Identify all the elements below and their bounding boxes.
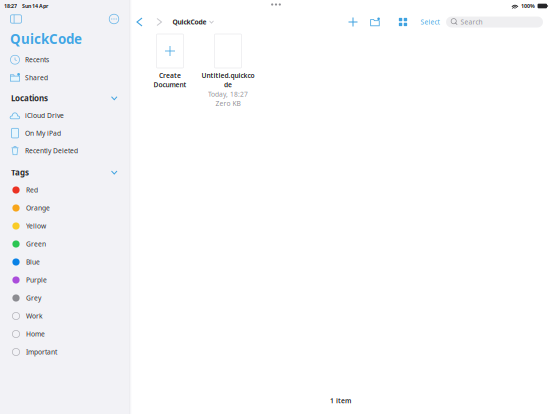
- button[interactable]: Green: [0, 235, 129, 253]
- staticText: Tags: [11, 167, 29, 178]
- button[interactable]: Collapse Locations: [107, 93, 121, 104]
- button[interactable]: New Folder: [365, 12, 385, 32]
- staticText: Home: [26, 330, 45, 338]
- staticText: QuickCode: [172, 18, 206, 26]
- button[interactable]: Orange: [0, 199, 129, 217]
- button[interactable]: Grey: [0, 289, 129, 307]
- staticText: Select: [420, 18, 439, 26]
- button[interactable]: Work: [0, 307, 129, 325]
- staticText: Search: [460, 18, 482, 26]
- staticText: Recently Deleted: [25, 146, 78, 155]
- button[interactable]: Important: [0, 343, 129, 361]
- staticText: Blue: [26, 258, 40, 266]
- button[interactable]: View Options: [393, 12, 413, 32]
- staticText: Recents: [25, 55, 49, 64]
- staticText: iCloud Drive: [25, 111, 64, 120]
- staticText: de: [224, 80, 232, 89]
- button[interactable]: New Document: [343, 12, 363, 32]
- staticText: Create: [159, 71, 181, 80]
- button[interactable]: On My iPad: [0, 124, 129, 142]
- staticText: Today, 18:27: [208, 90, 248, 99]
- staticText: Red: [26, 186, 38, 194]
- staticText: QuickCode: [10, 30, 82, 48]
- button[interactable]: QuickCode: [166, 14, 213, 30]
- staticText: Green: [26, 240, 46, 248]
- staticText: Sun 14 Apr: [22, 2, 48, 10]
- staticText: Document: [153, 80, 186, 89]
- button[interactable]: Home: [0, 325, 129, 343]
- button[interactable]: Toggle Sidebar: [8, 12, 24, 26]
- staticText: On My iPad: [25, 129, 61, 138]
- staticText: 18:27: [4, 2, 17, 10]
- button[interactable]: Collapse Tags: [107, 167, 121, 178]
- staticText: Orange: [26, 204, 50, 212]
- button[interactable]: Forward: [152, 14, 166, 29]
- staticText: Yellow: [26, 222, 46, 230]
- staticText: Purple: [26, 276, 47, 284]
- button[interactable]: Blue: [0, 253, 129, 271]
- staticText: Important: [26, 348, 57, 356]
- staticText: Locations: [11, 93, 48, 103]
- staticText: Work: [26, 312, 43, 320]
- button[interactable]: More: [107, 12, 121, 26]
- staticText: 100%: [521, 2, 535, 10]
- button[interactable]: Red: [0, 181, 129, 199]
- button[interactable]: Create: [141, 34, 199, 114]
- button[interactable]: Recently Deleted: [0, 142, 129, 159]
- button[interactable]: Search: [446, 16, 543, 27]
- staticText: 1 item: [330, 396, 351, 405]
- button[interactable]: Untitled.quickco: [199, 34, 257, 114]
- staticText: Grey: [26, 294, 41, 302]
- button[interactable]: Purple: [0, 271, 129, 289]
- staticText: Untitled.quickco: [201, 71, 254, 80]
- button[interactable]: Shared: [0, 69, 129, 87]
- staticText: Shared: [25, 73, 48, 82]
- button[interactable]: Recents: [0, 51, 129, 69]
- staticText: Zero KB: [215, 99, 240, 108]
- button[interactable]: Yellow: [0, 217, 129, 235]
- button[interactable]: Select: [417, 12, 443, 32]
- button[interactable]: Back: [132, 14, 147, 30]
- button[interactable]: iCloud Drive: [0, 107, 129, 124]
